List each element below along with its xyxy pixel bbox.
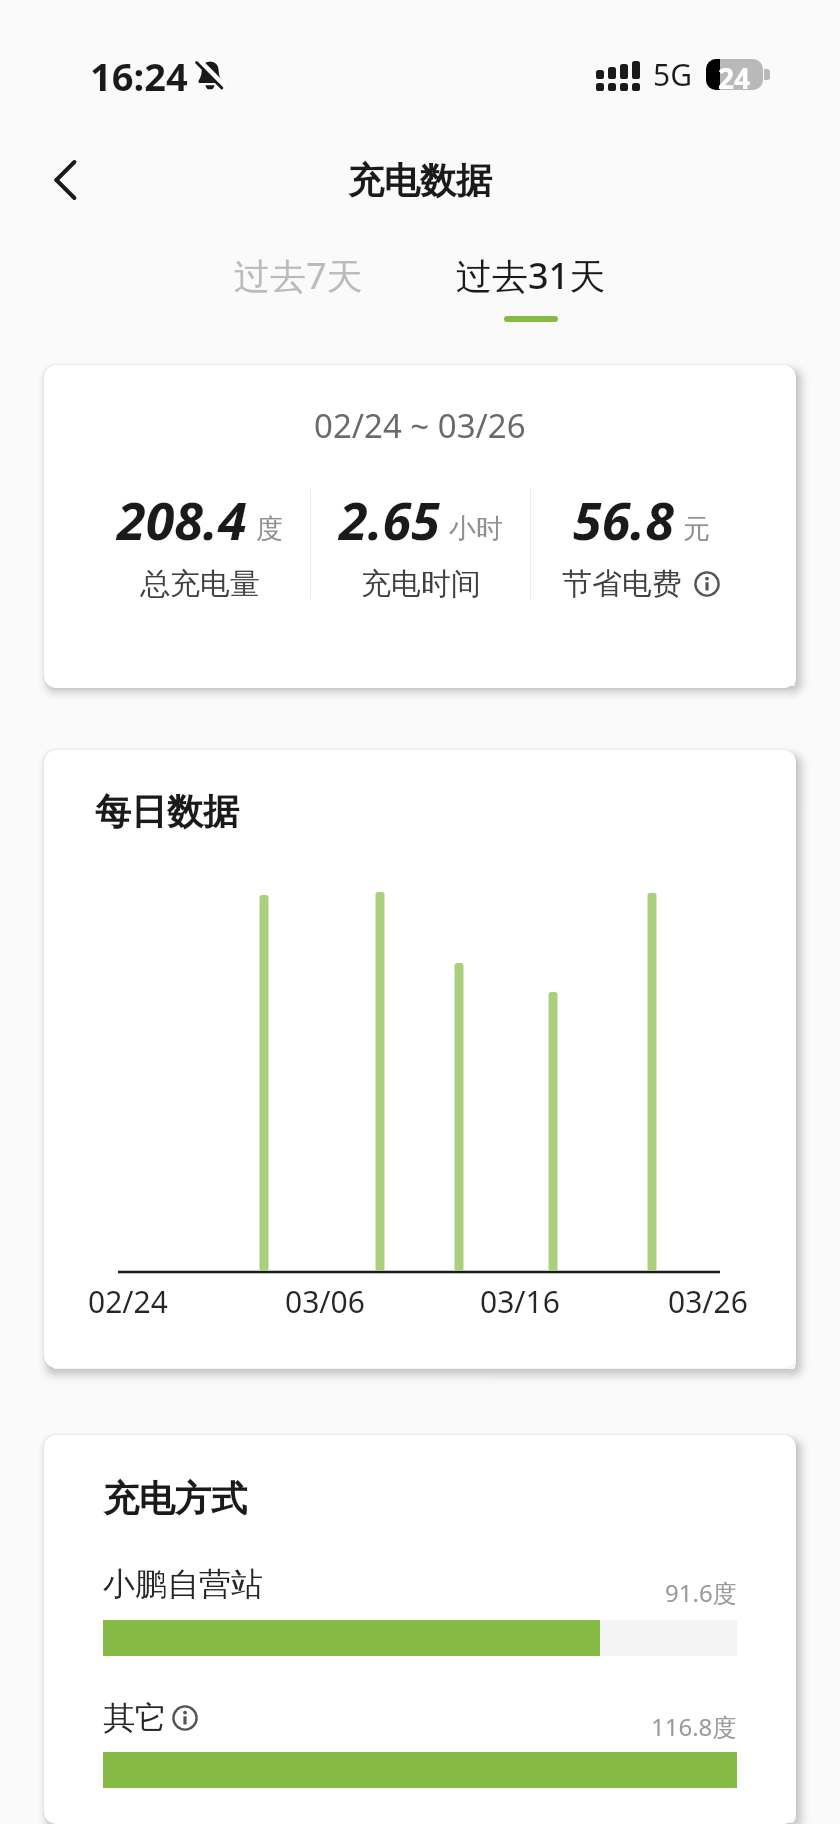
staticText: 02/24 ~ 03/26	[314, 403, 526, 448]
staticText: 过去7天	[234, 251, 363, 300]
staticText: 03/26	[668, 1281, 748, 1322]
staticText: 2.65	[339, 484, 440, 555]
staticText: 56.8	[573, 484, 674, 555]
staticText: 每日数据	[95, 789, 239, 834]
button[interactable]	[694, 571, 720, 597]
staticText: 24	[718, 59, 751, 90]
staticText: 91.6度	[665, 1576, 737, 1609]
staticText: 208.4	[117, 484, 247, 555]
staticText: 节省电费	[562, 565, 682, 603]
button[interactable]: 过去7天	[234, 251, 363, 300]
button[interactable]	[172, 1705, 198, 1731]
staticText: 充电数据	[348, 158, 492, 203]
staticText: 过去31天	[456, 251, 606, 300]
staticText: 02/24	[88, 1281, 168, 1322]
staticText: 充电方式	[103, 1476, 247, 1521]
staticText: 元	[683, 512, 710, 546]
staticText: 03/06	[285, 1281, 365, 1322]
staticText: 总充电量	[140, 565, 260, 603]
staticText: 小时	[449, 512, 503, 546]
button[interactable]: 过去31天	[456, 251, 606, 322]
staticText: 小鹏自营站	[103, 1564, 263, 1604]
button[interactable]	[44, 158, 88, 202]
staticText: 5G	[653, 54, 692, 95]
staticText: 16:24	[90, 50, 188, 98]
staticText: 其它	[103, 1698, 167, 1738]
staticText: 度	[256, 512, 283, 546]
staticText: 116.8度	[651, 1710, 737, 1743]
staticText: 充电时间	[361, 565, 481, 603]
staticText: 03/16	[480, 1281, 560, 1322]
